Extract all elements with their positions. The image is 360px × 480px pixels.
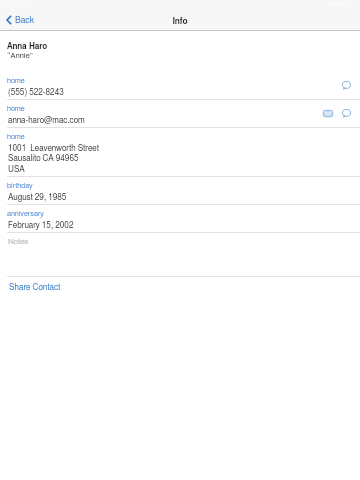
button[interactable]: home (0, 71, 360, 99)
staticText: anna-haro@mac.com (8, 116, 85, 124)
button[interactable]: Back (2, 11, 38, 29)
staticText: birthday (7, 182, 33, 189)
staticText: “Annie” (7, 52, 34, 60)
staticText: Back (15, 16, 35, 25)
button[interactable]: anniversary (0, 204, 360, 232)
staticText: August 29, 1985 (8, 193, 67, 201)
staticText: home (7, 133, 25, 140)
staticText: February 15, 2002 (8, 221, 74, 229)
button[interactable]: home (0, 127, 360, 176)
button[interactable]: Share Contact (4, 281, 66, 293)
button[interactable]: Message (342, 81, 351, 90)
button[interactable]: birthday (0, 176, 360, 204)
staticText: Anna Haro (7, 43, 48, 51)
staticText: anniversary (7, 210, 44, 217)
button[interactable]: Notes (0, 232, 360, 276)
button[interactable]: Message (342, 109, 351, 118)
staticText: 1001 Leavenworth Street Sausalito CA 949… (8, 144, 99, 174)
staticText: Share Contact (9, 283, 61, 291)
staticText: home (7, 77, 25, 84)
staticText: home (7, 105, 25, 112)
staticText: Notes (8, 238, 29, 246)
button[interactable]: Mail (323, 110, 333, 117)
button[interactable]: home (0, 99, 360, 127)
staticText: Info (0, 17, 360, 25)
staticText: (555) 522-8243 (8, 88, 64, 96)
